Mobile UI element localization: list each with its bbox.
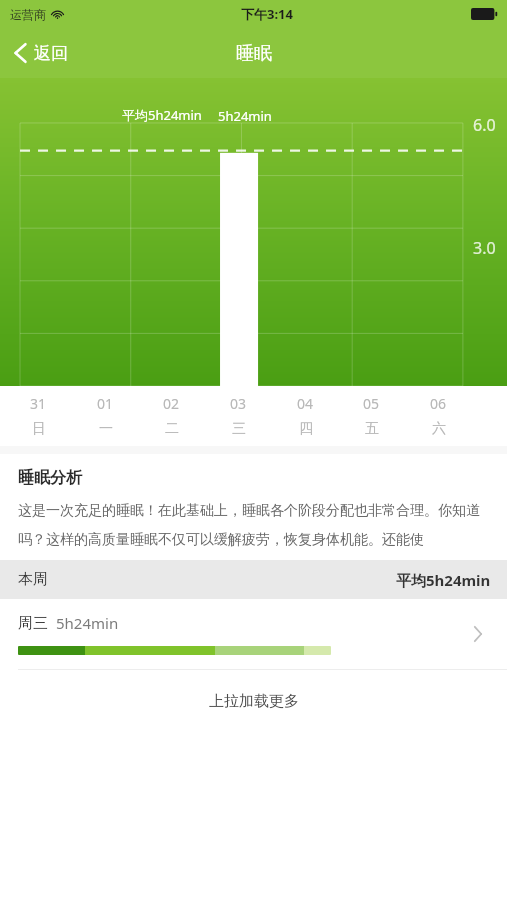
staticText: 三: [232, 420, 246, 438]
staticText: 05: [363, 394, 380, 413]
staticText: 下午3:14: [241, 5, 293, 23]
staticText: 6.0: [473, 114, 496, 136]
staticText: 本周: [18, 570, 48, 589]
staticText: 四: [299, 420, 313, 438]
staticText: 04: [297, 394, 314, 413]
button[interactable]: 上拉加载更多: [0, 670, 507, 732]
staticText: 02: [163, 394, 180, 413]
staticText: 五: [365, 420, 379, 438]
staticText: 这是一次充足的睡眠！在此基础上，睡眠各个阶段分配也非常合理。你知道吗？这样的高质…: [18, 502, 491, 548]
button[interactable]: 返回: [0, 36, 82, 70]
staticText: 01: [97, 394, 114, 413]
staticText: 六: [432, 420, 446, 438]
staticText: 上拉加载更多: [209, 692, 299, 711]
staticText: 睡眠分析: [18, 468, 82, 488]
other: 查看详情: [465, 621, 491, 647]
staticText: 日: [32, 420, 46, 438]
staticText: 平均5h24min: [396, 570, 491, 590]
staticText: 返回: [34, 43, 68, 64]
staticText: 二: [165, 420, 179, 438]
staticText: 5h24min: [218, 107, 272, 125]
staticText: 3.0: [473, 237, 496, 259]
staticText: 周三: [18, 614, 48, 633]
staticText: 03: [230, 394, 247, 413]
staticText: 运营商: [10, 7, 46, 22]
staticText: 5h24min: [56, 613, 119, 633]
staticText: 平均5h24min: [122, 106, 202, 124]
staticText: 睡眠: [236, 42, 272, 65]
staticText: 06: [430, 394, 447, 413]
button[interactable]: 周三: [0, 599, 507, 670]
staticText: 一: [99, 420, 113, 438]
staticText: 31: [30, 394, 47, 413]
